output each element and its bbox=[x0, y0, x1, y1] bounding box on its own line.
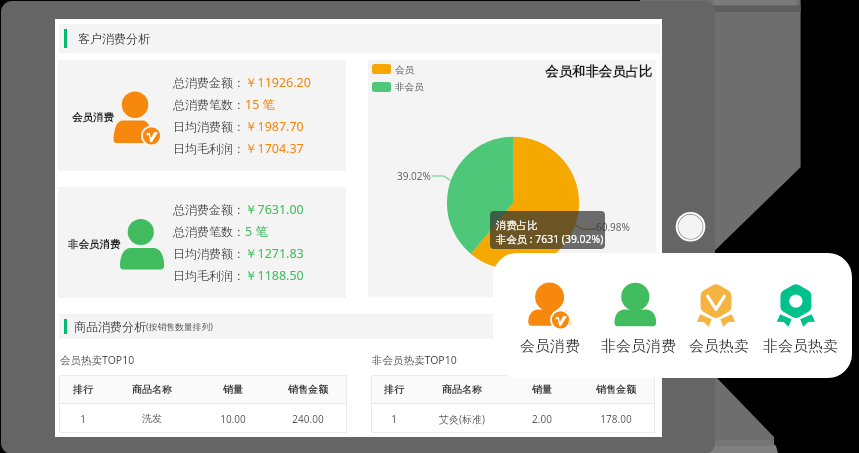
staticText: ￥7631.00 bbox=[245, 201, 304, 218]
staticText: 总消费金额： bbox=[173, 75, 245, 90]
staticText: 178.00 bbox=[600, 412, 632, 426]
staticText: 排行 bbox=[73, 383, 93, 396]
staticText: 会员 bbox=[395, 64, 414, 75]
staticText: 1 bbox=[80, 412, 86, 426]
staticText: 艾灸(标准) bbox=[439, 412, 485, 426]
staticText: 会员消费 bbox=[520, 337, 580, 356]
staticText: ￥1704.37 bbox=[245, 140, 304, 157]
staticText: (按销售数量排列) bbox=[146, 321, 213, 333]
staticText: 1 bbox=[391, 412, 397, 426]
staticText: 2.00 bbox=[532, 412, 552, 426]
staticText: 销售金额 bbox=[288, 383, 328, 396]
staticText: ￥1188.50 bbox=[245, 267, 304, 284]
staticText: ￥1271.83 bbox=[245, 245, 304, 262]
staticText: 总消费笔数： bbox=[173, 97, 245, 112]
button[interactable]: 非会员消费 bbox=[595, 267, 681, 357]
staticText: 销售金额 bbox=[596, 383, 636, 396]
staticText: 总消费金额： bbox=[173, 202, 245, 217]
staticText: 15 笔 bbox=[245, 96, 276, 113]
staticText: 洗发 bbox=[142, 412, 162, 425]
staticText: 排行 bbox=[384, 383, 404, 396]
staticText: 销量 bbox=[223, 383, 243, 396]
staticText: 5 笔 bbox=[245, 223, 268, 240]
staticText: 日均毛利润： bbox=[173, 268, 245, 283]
staticText: 消费占比 bbox=[496, 219, 538, 232]
staticText: 39.02% bbox=[397, 169, 431, 183]
button[interactable]: 会员 bbox=[368, 60, 656, 297]
button[interactable]: 会员消费 bbox=[58, 60, 346, 171]
staticText: 日均毛利润： bbox=[173, 141, 245, 156]
staticText: 总消费笔数： bbox=[173, 224, 245, 239]
button[interactable]: 商品消费分析 bbox=[59, 314, 660, 339]
staticText: 非会员消费 bbox=[68, 238, 121, 251]
staticText: 非会员热卖TOP10 bbox=[372, 353, 457, 367]
staticText: 客户消费分析 bbox=[78, 31, 150, 46]
staticText: 商品名称 bbox=[442, 383, 482, 396]
staticText: 商品消费分析 bbox=[74, 319, 146, 334]
staticText: 会员和非会员占比 bbox=[545, 63, 653, 78]
staticText: 非会员 : 7631 (39.02%) bbox=[496, 232, 604, 246]
staticText: 会员消费 bbox=[72, 111, 114, 124]
staticText: 会员热卖 bbox=[689, 337, 749, 356]
staticText: 日均消费额： bbox=[173, 119, 245, 134]
staticText: 非会员热卖 bbox=[763, 337, 838, 356]
staticText: 非会员 bbox=[395, 81, 424, 92]
button[interactable]: 客户消费分析 bbox=[59, 24, 660, 53]
staticText: 日均消费额： bbox=[173, 246, 245, 261]
button[interactable]: 会员热卖 bbox=[676, 267, 762, 357]
staticText: ￥1987.70 bbox=[245, 118, 304, 135]
staticText: 商品名称 bbox=[132, 383, 172, 396]
staticText: 销量 bbox=[532, 383, 552, 396]
staticText: 非会员消费 bbox=[601, 337, 676, 356]
staticText: 10.00 bbox=[220, 412, 246, 426]
staticText: 会员热卖TOP10 bbox=[60, 353, 135, 367]
staticText: 240.00 bbox=[292, 412, 324, 426]
button[interactable]: 非会员热卖 bbox=[757, 267, 843, 357]
button[interactable]: 非会员消费 bbox=[58, 187, 346, 298]
staticText: ￥11926.20 bbox=[245, 74, 311, 91]
button[interactable]: 会员消费 bbox=[507, 267, 593, 357]
staticText: 60.98% bbox=[596, 220, 630, 234]
